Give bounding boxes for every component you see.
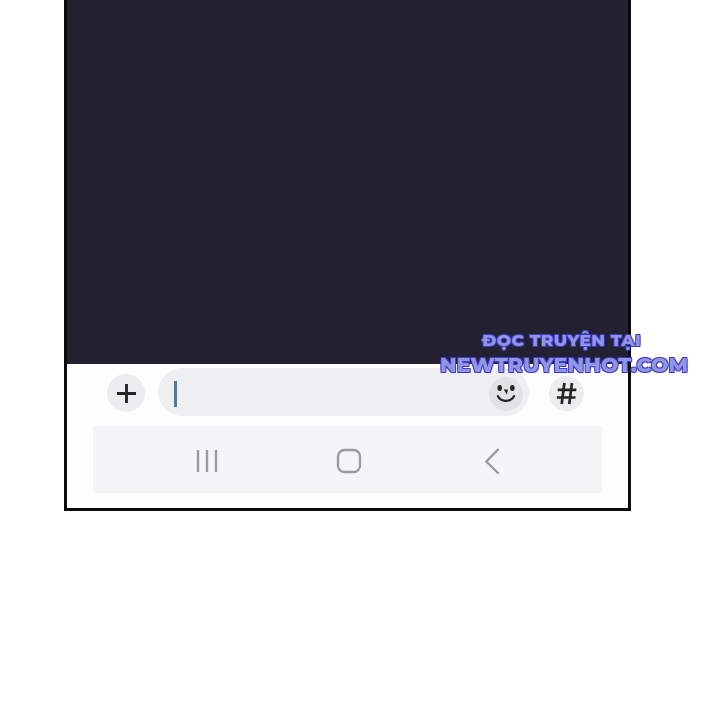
button[interactable]: Emoji (489, 377, 523, 411)
button[interactable]: Add attachment (107, 374, 145, 412)
button[interactable]: Message input field (158, 368, 529, 416)
staticText: ĐỌC TRUYỆN TẠI (483, 331, 643, 352)
staticText: NEWTRUYENHOT.COM (439, 351, 688, 376)
button[interactable]: Recents (180, 434, 234, 488)
staticText: ĐỌC TRUYỆN TẠI (481, 331, 641, 352)
staticText: NEWTRUYENHOT.COM (439, 353, 688, 378)
button[interactable]: Back (465, 434, 519, 488)
staticText: NEWTRUYENHOT.COM (440, 352, 689, 377)
staticText: NEWTRUYENHOT.COM (441, 353, 690, 378)
button[interactable]: Sticker (549, 376, 584, 411)
staticText: ĐỌC TRUYỆN TẠI (483, 329, 643, 350)
button[interactable]: Home (322, 434, 376, 488)
staticText: NEWTRUYENHOT.COM (441, 351, 690, 376)
staticText: ĐỌC TRUYỆN TẠI (481, 329, 641, 350)
staticText: ĐỌC TRUYỆN TẠI (482, 330, 642, 351)
